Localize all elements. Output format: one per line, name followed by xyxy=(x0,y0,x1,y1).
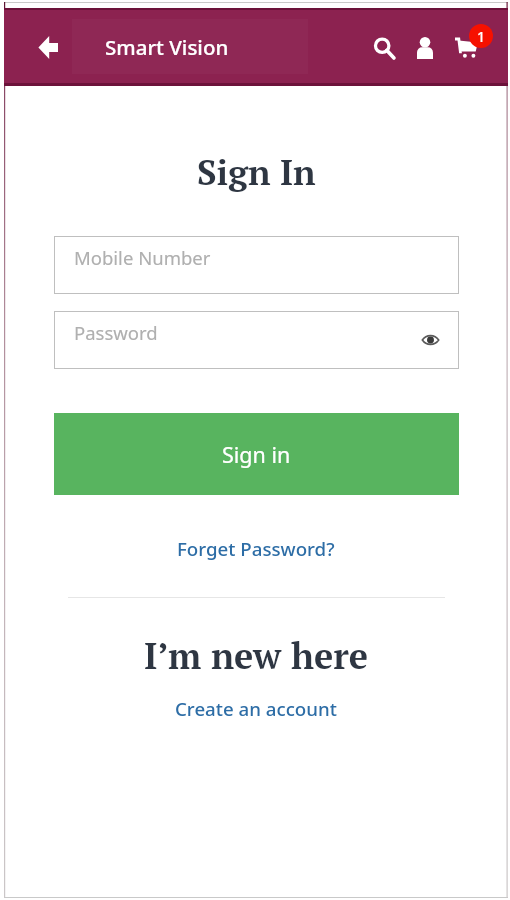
button[interactable]: Back xyxy=(28,27,68,67)
staticText: Sign in xyxy=(222,440,291,469)
button[interactable]: Search xyxy=(374,38,416,80)
button[interactable]: Mobile Number xyxy=(54,236,459,294)
staticText: Mobile Number xyxy=(74,245,211,270)
button[interactable]: Account xyxy=(417,37,433,59)
button[interactable]: Cart xyxy=(454,20,502,68)
button[interactable]: Smart Vision xyxy=(72,19,308,74)
button[interactable]: Show password xyxy=(417,327,443,353)
button[interactable]: Sign in xyxy=(54,413,459,495)
button[interactable]: Create an account xyxy=(167,690,345,727)
button[interactable]: Forget Password? xyxy=(169,530,343,567)
staticText: Sign In xyxy=(197,149,316,195)
button[interactable]: Password xyxy=(54,311,459,369)
staticText: Forget Password? xyxy=(177,536,335,561)
staticText: I’m new here xyxy=(144,632,369,680)
staticText: Create an account xyxy=(175,696,337,721)
staticText: 1 xyxy=(477,27,486,46)
staticText: Password xyxy=(74,320,158,345)
staticText: Smart Vision xyxy=(105,33,229,61)
